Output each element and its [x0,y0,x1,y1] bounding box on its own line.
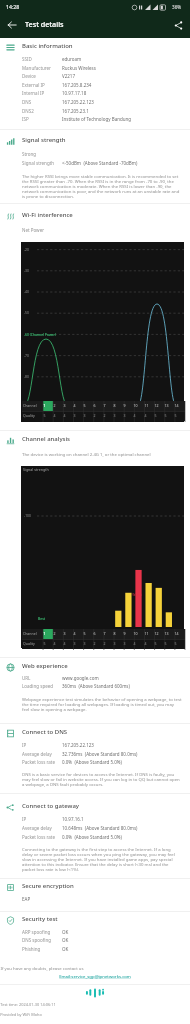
staticText: 8 [113,403,116,408]
staticText: Channel analysis [22,435,71,443]
staticText: -40 [24,289,29,294]
staticText: -60 (Channel Power) [24,332,56,337]
staticText: 3 [63,403,66,408]
staticText: 7 [103,631,106,636]
staticText: 3 [73,641,76,646]
staticText: URL [22,675,31,681]
staticText: OK [62,937,69,943]
staticText: ISP [22,116,29,122]
staticText: 6 [93,631,96,636]
staticText: 9 [123,403,126,408]
staticText: Connect to DNS [22,728,68,736]
button[interactable]: Back [2,15,22,35]
staticText: Signal strength [22,160,55,166]
staticText: Quality [23,641,35,646]
staticText: If you have any doubts, please contact u… [0,965,84,971]
staticText: 3 [113,641,116,646]
staticText: The higher RSSI brings more stable commu… [22,173,182,199]
staticText: Connect to gateway [22,802,79,810]
staticText: 2 [93,641,96,646]
staticText: 3 [113,413,116,418]
staticText: 14:28 [6,3,20,10]
staticText: 5 [174,641,177,646]
staticText: www.google.com [62,675,99,681]
staticText: IP [22,742,27,748]
staticText: 10.648ms (Above Standard 80.0ms) [62,825,138,831]
staticText: Loading speed [22,683,54,689]
staticText: Connecting to the gateway is the first s… [22,846,182,872]
staticText: Channel [23,403,37,408]
button[interactable]: Email:service_sgp@ipnetworks.com [0,973,190,979]
staticText: External IP [22,82,45,88]
staticText: 4 [73,631,76,636]
staticText: IP [22,816,27,822]
staticText: 4 [133,641,136,646]
staticText: 5 [154,413,157,418]
staticText: 2 [103,413,106,418]
staticText: EAP [22,896,31,902]
staticText: 5 [83,631,86,636]
staticText: 5 [164,413,167,418]
staticText: Internal IP [22,90,45,96]
staticText: 2 [103,641,106,646]
staticText: 3 [123,641,126,646]
staticText: 167.205.8.234 [62,82,92,88]
staticText: 5 [43,641,46,646]
staticText: 0.0% (Above Standard 5.0%) [62,759,122,765]
staticText: DNS [22,99,32,105]
staticText: Email:service_sgp@ipnetworks.com [59,973,131,979]
staticText: 32.736ms (Above Standard 80.0ms) [62,751,138,757]
staticText: DNS is a basic service for devices to ac… [22,771,182,787]
staticText: Security test [22,915,58,923]
staticText: 4 [73,403,76,408]
staticText: Average delay [22,825,52,831]
staticText: Provided by WiFi Moho [0,1012,42,1017]
staticText: Test details [25,19,64,29]
staticText: Institute of Technology Bandung [62,116,132,122]
staticText: 10 [133,631,138,636]
staticText: 7 [103,403,106,408]
staticText: 5 [164,641,167,646]
staticText: 4 [144,413,147,418]
staticText: 4 [133,413,136,418]
staticText: 12 [154,631,159,636]
staticText: 2 [53,403,56,408]
staticText: OK [62,946,69,952]
staticText: -50 [24,310,29,315]
staticText: 14 [174,403,179,408]
staticText: Channel [23,631,37,636]
staticText: -30 [24,268,29,273]
staticText: Ruckus Wireless [62,65,96,71]
staticText: 14 [174,631,179,636]
staticText: 4 [53,641,56,646]
staticText: -20 [24,247,29,252]
staticText: 1 [43,631,46,636]
staticText: -80 [24,374,29,379]
staticText: 167.205.22.123 [62,742,94,748]
staticText: Basic information [22,42,73,50]
staticText: Signal strength [22,136,66,144]
button[interactable]: Share [168,15,188,35]
staticText: 12 [154,403,159,408]
staticText: 360ms (Above Standard 600ms) [62,683,130,689]
staticText: 11 [144,631,149,636]
staticText: 10 [133,403,138,408]
staticText: 2 [53,631,56,636]
staticText: Phishing [22,946,41,952]
staticText: 4 [63,641,66,646]
staticText: 11 [144,403,149,408]
staticText: 4 [144,641,147,646]
staticText: 4 [53,413,56,418]
staticText: 167.205.22.123 [62,99,94,105]
staticText: 8 [113,631,116,636]
staticText: 3 [83,641,86,646]
staticText: 0.0% (Above Standard 5.0%) [62,834,122,840]
staticText: -100 [24,513,31,518]
staticText: OK [62,929,69,935]
staticText: 2 [93,413,96,418]
staticText: 1 [43,403,46,408]
staticText: 36% [172,4,182,10]
staticText: Secure encryption [22,882,74,890]
staticText: 4 [63,413,66,418]
staticText: V2217 [62,73,75,79]
